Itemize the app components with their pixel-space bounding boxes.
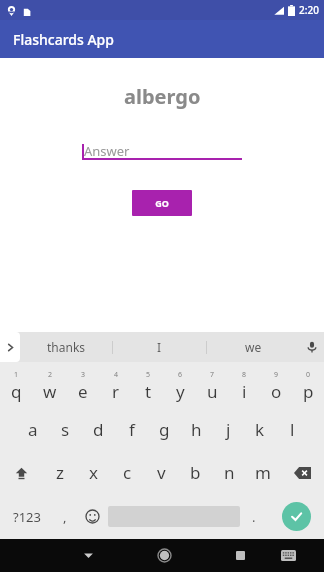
staticText: b [190,461,201,484]
staticText: 9 [274,370,279,380]
staticText: y [176,380,185,403]
staticText: . [252,508,256,526]
button[interactable]: GO [132,190,192,216]
button[interactable]: z [43,451,76,494]
staticText: , [63,508,67,526]
button[interactable]: Recents [220,539,260,572]
staticText: e [78,380,88,403]
staticText: w [43,380,57,403]
button[interactable]: k [244,408,276,451]
button[interactable]: Emoji [77,494,108,539]
staticText: 3 [81,370,86,380]
staticText: m [255,461,271,484]
button[interactable]: 2 [33,365,66,408]
staticText: j [226,418,231,441]
staticText: thanks [47,339,86,355]
staticText: 0 [306,370,311,380]
staticText: GO [155,197,169,209]
staticText: t [145,380,152,403]
button[interactable]: we [207,332,300,362]
button[interactable]: c [110,451,144,494]
button[interactable]: h [180,408,212,451]
staticText: h [191,418,202,441]
button[interactable]: 4 [99,365,132,408]
staticText: 5 [146,370,151,380]
button[interactable]: d [82,408,115,451]
button[interactable]: s [49,408,82,451]
button[interactable]: . [240,494,268,539]
staticText: ?123 [13,508,41,526]
staticText: x [89,461,98,484]
staticText: f [129,418,135,441]
staticText: 2 [48,370,53,380]
button[interactable]: 6 [164,365,196,408]
staticText: I [157,339,162,355]
button[interactable]: , [53,494,77,539]
staticText: g [159,418,170,441]
button[interactable]: n [212,451,246,494]
button[interactable]: Backspace [280,451,324,494]
staticText: n [224,461,235,484]
staticText: 4 [114,370,119,380]
staticText: u [207,380,218,403]
staticText: d [93,418,104,441]
button[interactable]: Expand suggestions [0,332,20,362]
button[interactable]: j [212,408,244,451]
button[interactable]: Switch keyboard [268,539,308,572]
staticText: r [112,380,120,403]
staticText: v [157,461,166,484]
button[interactable]: g [148,408,180,451]
button[interactable]: a [16,408,49,451]
button[interactable]: Answer [82,142,242,160]
staticText: s [61,418,70,441]
staticText: Flashcards App [13,30,114,49]
button[interactable]: Shift [0,451,43,494]
button[interactable]: Home [144,539,184,572]
button[interactable]: v [144,451,178,494]
staticText: o [271,380,282,403]
staticText: we [245,339,262,355]
staticText: k [255,418,265,441]
staticText: l [290,418,295,441]
staticText: 7 [210,370,215,380]
button[interactable]: Voice input [300,332,324,362]
staticText: 2:20 [299,3,319,17]
staticText: c [123,461,132,484]
button[interactable]: I [113,332,206,362]
staticText: z [56,461,64,484]
staticText: albergo [124,83,201,110]
staticText: 1 [14,370,19,380]
staticText: a [28,418,38,441]
staticText: Answer [84,142,130,160]
button[interactable]: b [178,451,212,494]
button[interactable]: 1 [0,365,33,408]
button[interactable]: 7 [196,365,228,408]
button[interactable]: Hide keyboard [68,539,108,572]
button[interactable]: l [276,408,308,451]
button[interactable]: ?123 [0,494,53,539]
button[interactable]: 0 [292,365,324,408]
button[interactable]: 8 [228,365,260,408]
button[interactable]: 3 [66,365,99,408]
staticText: 6 [178,370,183,380]
staticText: i [242,380,247,403]
button[interactable]: thanks [20,332,112,362]
button[interactable]: 9 [260,365,292,408]
button[interactable]: x [76,451,110,494]
staticText: 8 [242,370,247,380]
button[interactable]: f [115,408,148,451]
button[interactable]: m [246,451,280,494]
button[interactable]: 5 [132,365,164,408]
staticText: p [303,380,314,403]
button[interactable]: Enter [268,494,324,539]
staticText: q [11,380,22,403]
